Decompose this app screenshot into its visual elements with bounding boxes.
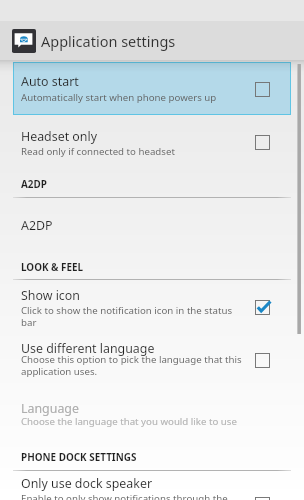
staticText: Enable to only show notifications throug… (21, 492, 246, 500)
other: Disabled (254, 81, 276, 103)
button[interactable] (13, 471, 291, 500)
staticText: Application settings (41, 31, 176, 51)
staticText: Choose this option to pick the language … (21, 353, 246, 377)
staticText: Language (21, 400, 79, 417)
button[interactable] (13, 280, 291, 336)
other: Disabled (254, 352, 276, 374)
button[interactable] (13, 336, 291, 392)
staticText: A2DP (21, 217, 53, 234)
staticText: Auto start (21, 73, 79, 90)
button[interactable] (13, 394, 291, 440)
staticText: Automatically start when phone powers up (21, 91, 217, 104)
staticText: Show icon (21, 287, 80, 304)
other: Enabled (254, 299, 276, 321)
other: Disabled (254, 134, 276, 156)
button[interactable] (13, 198, 291, 252)
button[interactable] (13, 62, 291, 115)
other: App icon (12, 29, 36, 53)
staticText: A2DP (21, 177, 47, 190)
staticText: LOOK & FEEL (21, 260, 84, 273)
staticText: Use different language (21, 340, 155, 357)
staticText: PHONE DOCK SETTINGS (21, 450, 137, 463)
staticText: Click to show the notification icon in t… (21, 304, 246, 328)
staticText: Read only if connected to headset (21, 145, 175, 158)
staticText: Choose the language that you would like … (21, 415, 237, 428)
staticText: Only use dock speaker (21, 475, 152, 492)
button[interactable] (13, 115, 291, 168)
other: Disabled (254, 496, 276, 500)
staticText: Headset only (21, 128, 98, 145)
button[interactable]: App icon (0, 21, 304, 60)
